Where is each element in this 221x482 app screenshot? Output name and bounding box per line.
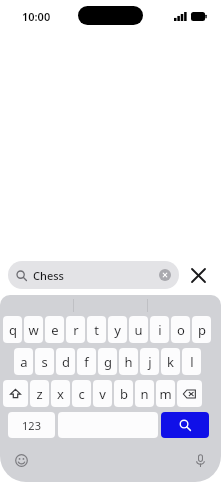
button[interactable]: Voice input (187, 447, 213, 473)
button[interactable]: y (108, 316, 127, 343)
staticText: r (73, 321, 79, 339)
button[interactable]: 123 (8, 412, 55, 438)
staticText: 123 (22, 418, 41, 433)
button[interactable]: Search (161, 412, 209, 438)
button[interactable]: p (192, 316, 211, 343)
button[interactable]: v (93, 380, 112, 407)
button[interactable]: j (140, 348, 159, 375)
button[interactable]: q (3, 316, 22, 343)
staticText: p (198, 321, 206, 339)
button[interactable]: Chess (8, 261, 179, 289)
staticText: g (104, 353, 112, 371)
staticText: j (148, 353, 152, 371)
button[interactable]: x (51, 380, 70, 407)
staticText: n (140, 385, 149, 403)
staticText: y (114, 321, 121, 339)
staticText: f (84, 353, 89, 371)
staticText: c (78, 385, 85, 403)
button[interactable]: Close search (183, 261, 213, 289)
staticText: t (94, 321, 99, 339)
button[interactable]: g (98, 348, 117, 375)
staticText: a (20, 353, 28, 371)
button[interactable]: n (135, 380, 154, 407)
button[interactable]: w (24, 316, 43, 343)
staticText: x (57, 385, 64, 403)
staticText: w (28, 321, 39, 339)
button[interactable]: e (45, 316, 64, 343)
staticText: Chess (33, 268, 64, 283)
staticText: o (177, 321, 185, 339)
button[interactable]: r (66, 316, 85, 343)
button[interactable]: Clear query (159, 269, 171, 281)
button[interactable]: z (30, 380, 49, 407)
staticText: l (190, 353, 194, 371)
button[interactable]: b (114, 380, 133, 407)
button[interactable]: i (150, 316, 169, 343)
button[interactable]: c (72, 380, 91, 407)
staticText: z (36, 385, 43, 403)
staticText: h (124, 353, 133, 371)
staticText: e (51, 321, 59, 339)
button[interactable]: Shift (3, 380, 28, 407)
staticText: v (99, 385, 106, 403)
staticText: b (120, 385, 128, 403)
staticText: q (9, 321, 17, 339)
staticText: d (62, 353, 70, 371)
button[interactable]: l (182, 348, 201, 375)
button[interactable]: f (77, 348, 96, 375)
button[interactable]: k (161, 348, 180, 375)
staticText: s (41, 353, 48, 371)
button[interactable]: d (56, 348, 75, 375)
button[interactable]: u (129, 316, 148, 343)
button[interactable]: h (119, 348, 138, 375)
staticText: 10:00 (22, 9, 51, 24)
staticText: m (159, 385, 172, 403)
button[interactable]: o (171, 316, 190, 343)
staticText: i (158, 321, 162, 339)
staticText: u (134, 321, 143, 339)
button[interactable]: a (14, 348, 33, 375)
button[interactable]: s (35, 348, 54, 375)
button[interactable]: m (156, 380, 175, 407)
button[interactable]: Emoji (8, 447, 34, 473)
button[interactable]: t (87, 316, 106, 343)
button[interactable]: Backspace (177, 380, 202, 407)
staticText: k (167, 353, 174, 371)
